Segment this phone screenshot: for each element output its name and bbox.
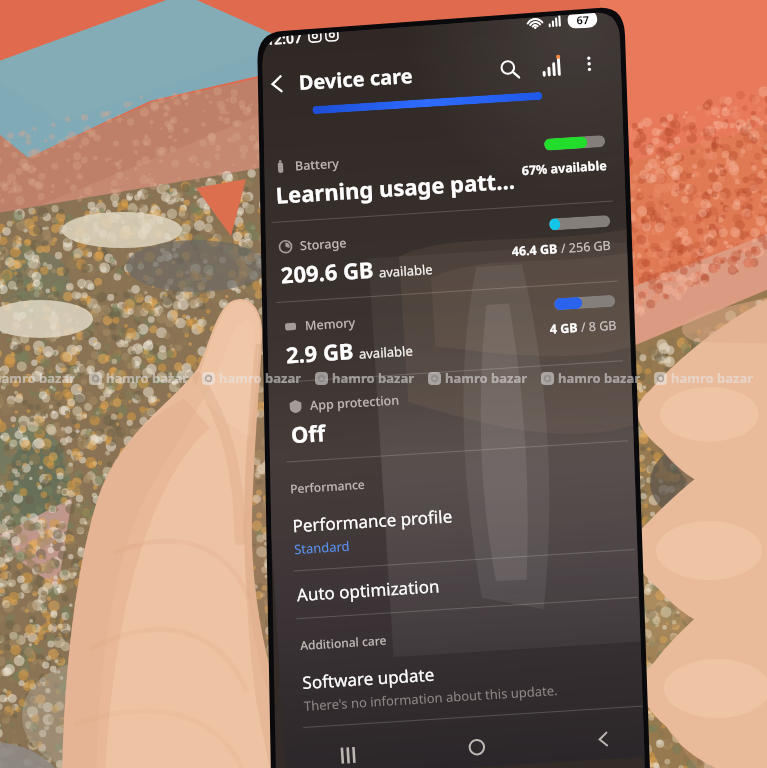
button[interactable]: Storage (253, 216, 637, 291)
button[interactable]: More options (573, 48, 605, 80)
staticText: Memory (304, 314, 356, 334)
button[interactable]: App protection (263, 376, 647, 451)
staticText: 67 (576, 12, 590, 27)
staticText: 209.6 GB (280, 254, 374, 290)
button[interactable]: Back (538, 715, 668, 763)
staticText: Auto optimization (296, 574, 440, 606)
button[interactable]: Back (260, 66, 294, 100)
button[interactable]: Auto optimization (273, 549, 658, 620)
staticText: available (378, 260, 433, 281)
staticText: Standard (293, 537, 350, 558)
staticText: / 8 GB (577, 317, 617, 336)
staticText: Learning usage patt... (275, 165, 516, 210)
staticText: hamro bazar (445, 369, 527, 387)
staticText: Battery (294, 155, 339, 174)
staticText: / 256 GB (557, 237, 612, 257)
staticText: hamro bazar (332, 369, 414, 387)
staticText: available (358, 341, 413, 363)
staticText: Device care (298, 62, 413, 96)
staticText: Performance (290, 476, 366, 496)
button[interactable]: Battery (248, 136, 632, 211)
button[interactable]: Home (412, 723, 541, 768)
button[interactable]: Diagnostics (533, 48, 569, 84)
staticText: hamro bazar (219, 369, 301, 387)
button[interactable]: Memory (258, 296, 642, 371)
staticText: hamro bazar (671, 369, 753, 387)
staticText: hamro bazar (0, 369, 75, 387)
staticText: Software update (302, 663, 435, 694)
staticText: 2.9 GB (285, 335, 355, 369)
staticText: 12:07 (265, 28, 302, 49)
staticText: Off (290, 417, 327, 449)
staticText: Storage (299, 234, 347, 254)
button[interactable]: Search (491, 51, 527, 87)
staticText: There's no information about this update… (303, 681, 558, 715)
button[interactable]: Software update (279, 636, 664, 728)
staticText: App protection (309, 391, 400, 414)
staticText: hamro bazar (106, 369, 188, 387)
button[interactable]: Performance profile (269, 480, 655, 572)
staticText: 46.4 GB (511, 240, 558, 260)
staticText: Performance profile (292, 504, 453, 537)
staticText: hamro bazar (558, 369, 640, 387)
staticText: 4 GB (549, 319, 578, 338)
staticText: Additional care (300, 632, 387, 653)
button[interactable]: Recents (284, 731, 414, 768)
staticText: 67% available (521, 157, 607, 179)
